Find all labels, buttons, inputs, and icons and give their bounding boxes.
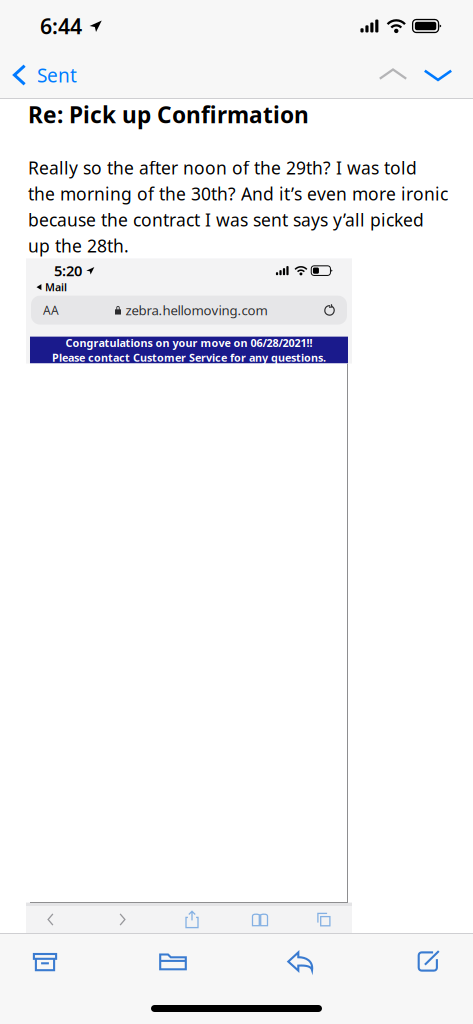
button[interactable]: New message: [393, 938, 465, 984]
button[interactable]: Sent: [0, 56, 77, 94]
button[interactable]: Previous message: [371, 53, 415, 97]
staticText: 5:20: [54, 261, 82, 281]
button[interactable]: Move to folder: [137, 938, 209, 984]
staticText: 6:44: [40, 11, 82, 41]
staticText: Sent: [37, 62, 77, 88]
staticText: Re: Pick up Confirmation: [28, 99, 309, 130]
staticText: Congratulations on your move on 06/28/20…: [65, 335, 312, 350]
staticText: Please contact Customer Service for any …: [52, 350, 326, 365]
button[interactable]: Archive: [9, 938, 81, 984]
staticText: Really so the after noon of the 29th? I …: [28, 156, 448, 258]
button[interactable]: Reply: [265, 938, 337, 984]
button[interactable]: Next message: [416, 53, 460, 97]
staticText: Mail: [45, 280, 67, 294]
staticText: zebra.hellomoving.com: [125, 301, 267, 319]
staticText: AA: [43, 302, 59, 318]
